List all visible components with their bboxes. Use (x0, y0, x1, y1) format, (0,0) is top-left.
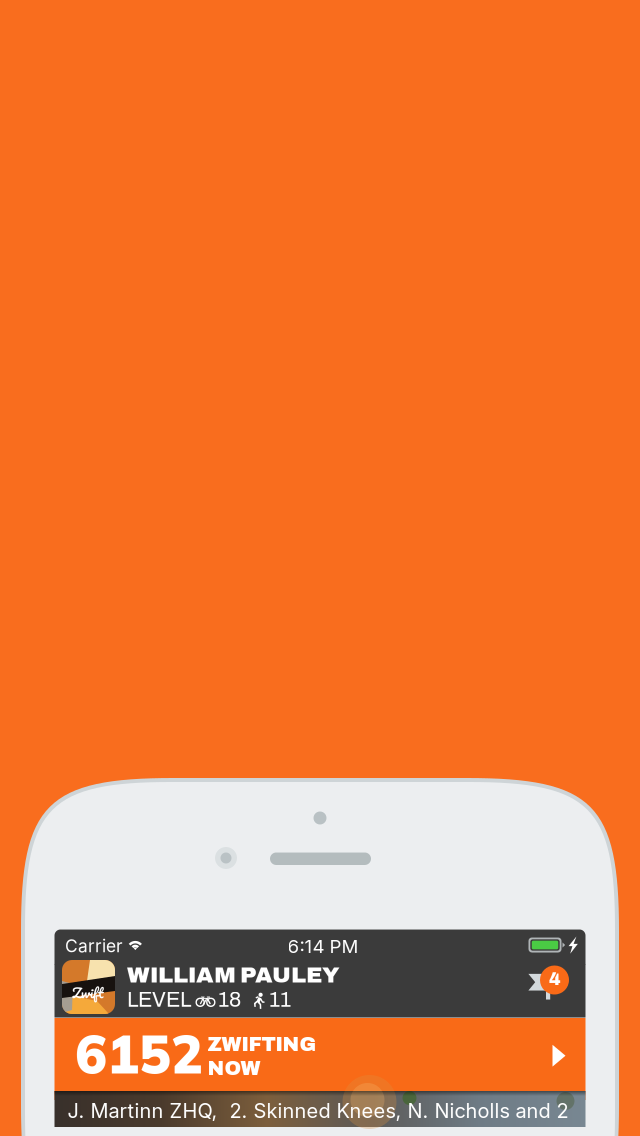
staticText: Carrier (65, 935, 123, 956)
staticText: 6:14 PM (287, 935, 358, 958)
staticText: 18 (218, 988, 241, 1011)
staticText: WILLIAM PAULEY (127, 962, 340, 987)
staticText: 11 (269, 988, 291, 1011)
button[interactable]: J. Martinn ZHQ, 2. Skinned Knees, N. Nic… (54, 1100, 585, 1136)
button[interactable]: 6152 (54, 1018, 585, 1100)
staticText: Zwift (72, 981, 104, 1004)
staticText: LEVEL (127, 988, 191, 1011)
staticText: 4 (549, 970, 561, 989)
staticText: NOW (207, 1057, 260, 1079)
staticText: 6152 (75, 1020, 203, 1087)
staticText: J. Martinn ZHQ, 2. Skinned Knees, N. Nic… (67, 1098, 568, 1123)
staticText: ZWIFTING (207, 1033, 316, 1055)
button[interactable]: Zwift (54, 965, 585, 1018)
